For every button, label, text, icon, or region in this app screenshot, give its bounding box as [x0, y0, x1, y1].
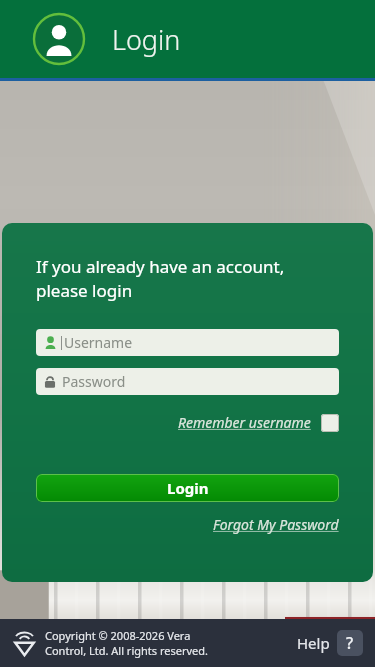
button[interactable]: Help — [297, 630, 363, 656]
staticText: Copyright © 2008-2026 Vera Control, Ltd.… — [45, 628, 208, 658]
button[interactable]: Remember username — [178, 413, 339, 432]
button[interactable]: Password — [36, 368, 339, 395]
staticText: Username — [64, 333, 133, 352]
staticText: ? — [346, 632, 354, 654]
other: Help — [337, 630, 363, 656]
staticText: Login — [112, 21, 181, 58]
staticText: Password — [62, 372, 126, 391]
staticText: Help — [297, 633, 330, 653]
staticText: Login — [167, 478, 209, 498]
other: Account — [32, 12, 86, 66]
staticText: Remember username — [178, 413, 311, 432]
staticText: Forgot My Password — [213, 515, 339, 534]
button[interactable]: Username — [36, 329, 339, 356]
button[interactable]: Forgot My Password — [213, 515, 339, 534]
staticText: If you already have an account, please l… — [36, 255, 285, 302]
button[interactable]: Login — [36, 474, 339, 502]
